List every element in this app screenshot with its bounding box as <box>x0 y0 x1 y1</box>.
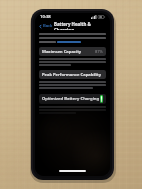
button[interactable]: Back <box>38 22 54 30</box>
button[interactable]: Optimized Battery Charging <box>39 94 106 104</box>
staticText: 87% <box>95 49 103 54</box>
button[interactable]: Optimized Battery Charging toggle, on <box>100 95 103 103</box>
staticText: Maximum Capacity <box>42 49 82 55</box>
staticText: Back <box>43 23 53 29</box>
button[interactable]: Maximum Capacity <box>39 47 106 56</box>
staticText: Peak Performance Capability <box>42 72 101 78</box>
staticText: Optimized Battery Charging <box>42 96 100 102</box>
button[interactable] <box>57 41 81 43</box>
button[interactable]: Peak Performance Capability <box>39 70 106 79</box>
staticText: Battery Health & Charging <box>54 21 107 30</box>
staticText: 10:38 <box>40 14 51 20</box>
